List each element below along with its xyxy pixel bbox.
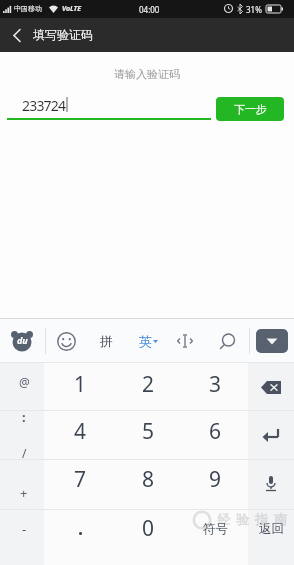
- staticText: 5: [142, 417, 155, 446]
- staticText: 9: [209, 465, 222, 494]
- button[interactable]: 4: [47, 410, 114, 452]
- staticText: 2: [142, 370, 155, 399]
- button[interactable]: +: [9, 481, 39, 505]
- staticText: .: [78, 516, 84, 541]
- staticText: 233724: [22, 96, 66, 115]
- button[interactable]: 0: [115, 507, 182, 550]
- button[interactable]: du: [6, 325, 38, 357]
- staticText: /: [22, 445, 27, 461]
- button[interactable]: 返回: [248, 507, 294, 550]
- button[interactable]: :: [9, 405, 39, 429]
- button[interactable]: [52, 326, 80, 356]
- staticText: 04:00: [139, 4, 160, 15]
- staticText: 填写验证码: [33, 27, 93, 42]
- staticText: 请输入验证码: [114, 67, 180, 81]
- button[interactable]: 下一步: [216, 97, 284, 121]
- staticText: 7: [74, 465, 87, 494]
- button[interactable]: -: [9, 517, 39, 541]
- staticText: :: [22, 408, 26, 426]
- button[interactable]: 拼: [92, 326, 120, 356]
- button[interactable]: 1: [47, 363, 114, 405]
- staticText: 符号: [203, 521, 228, 537]
- staticText: 下一步: [234, 102, 267, 116]
- button[interactable]: 2: [115, 363, 182, 405]
- staticText: 1: [74, 370, 87, 399]
- button[interactable]: 7: [47, 458, 114, 501]
- staticText: 中国移动: [14, 4, 42, 13]
- button[interactable]: [252, 421, 290, 449]
- staticText: 返回: [259, 521, 284, 537]
- staticText: 8: [142, 465, 155, 494]
- button[interactable]: 3: [182, 363, 249, 405]
- button[interactable]: 6: [182, 410, 249, 452]
- button[interactable]: .: [47, 507, 114, 550]
- staticText: 31%: [246, 4, 262, 15]
- button[interactable]: [212, 326, 242, 356]
- staticText: 4: [74, 417, 87, 446]
- staticText: 0: [142, 514, 155, 543]
- button[interactable]: @: [9, 370, 39, 394]
- staticText: VoLTE: [62, 4, 81, 14]
- button[interactable]: 英: [132, 326, 166, 356]
- button[interactable]: [4, 21, 30, 49]
- staticText: @: [19, 374, 30, 390]
- staticText: 英: [139, 333, 152, 349]
- button[interactable]: [256, 329, 288, 353]
- staticText: 经验指南: [214, 511, 290, 527]
- button[interactable]: [252, 470, 290, 498]
- staticText: 6: [209, 417, 222, 446]
- staticText: du: [17, 334, 28, 346]
- button[interactable]: 9: [182, 458, 249, 501]
- button[interactable]: [252, 373, 290, 401]
- staticText: -: [22, 520, 27, 538]
- button[interactable]: /: [9, 441, 39, 465]
- staticText: 3: [209, 370, 222, 399]
- staticText: +: [20, 484, 28, 502]
- button[interactable]: 5: [115, 410, 182, 452]
- button[interactable]: 符号: [182, 507, 249, 550]
- staticText: 拼: [100, 333, 113, 349]
- button[interactable]: [171, 326, 199, 356]
- button[interactable]: 8: [115, 458, 182, 501]
